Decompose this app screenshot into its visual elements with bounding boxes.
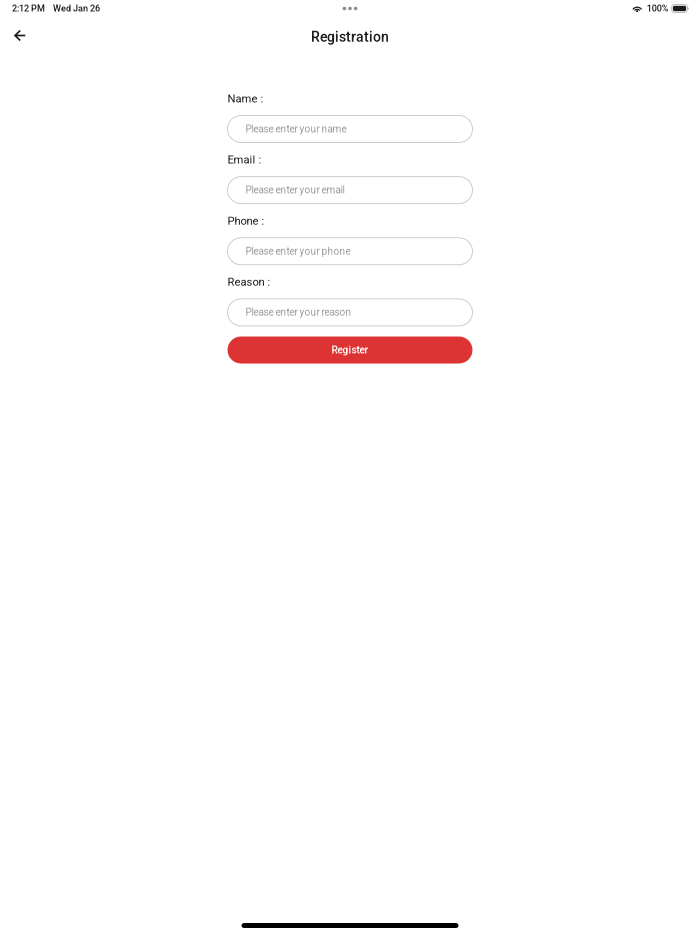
- staticText: Register: [331, 344, 368, 356]
- staticText: Reason :: [227, 275, 270, 288]
- button[interactable]: Register: [227, 336, 472, 363]
- staticText: Please enter your email: [245, 184, 344, 196]
- button[interactable]: Please enter your name: [227, 115, 472, 142]
- staticText: Please enter your name: [245, 123, 346, 135]
- staticText: 2:12 PM: [12, 3, 45, 14]
- staticText: Phone :: [227, 214, 264, 227]
- staticText: Email :: [227, 153, 261, 166]
- staticText: 100%: [647, 3, 669, 14]
- staticText: Registration: [311, 29, 389, 45]
- button[interactable]: Please enter your phone: [227, 238, 472, 265]
- staticText: Wed Jan 26: [53, 3, 100, 14]
- button[interactable]: Please enter your reason: [227, 299, 472, 326]
- staticText: Name :: [227, 92, 263, 105]
- staticText: Please enter your reason: [245, 306, 351, 318]
- staticText: Please enter your phone: [245, 245, 350, 257]
- button[interactable]: Please enter your email: [227, 177, 472, 204]
- button[interactable]: Back: [0, 20, 38, 50]
